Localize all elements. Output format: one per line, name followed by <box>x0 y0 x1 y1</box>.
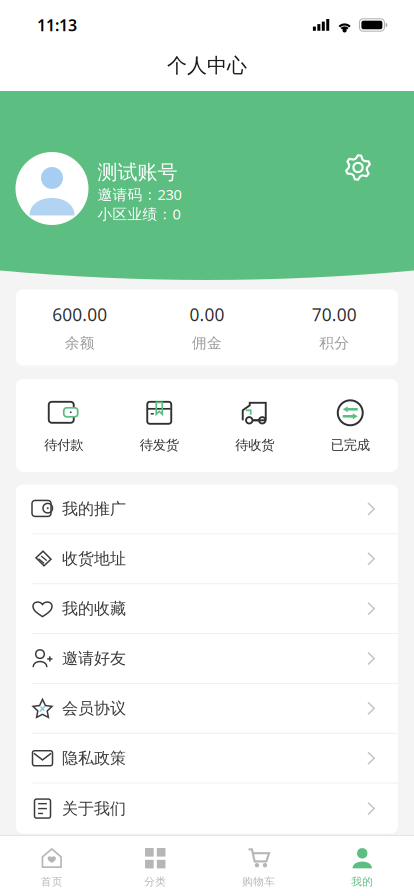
staticText: 收货地址 <box>62 549 126 569</box>
staticText: 分类 <box>144 875 166 888</box>
staticText: 11:13 <box>37 14 77 36</box>
staticText: 个人中心 <box>167 53 247 78</box>
button[interactable]: 邀请好友 <box>16 634 398 684</box>
staticText: 已完成 <box>331 437 370 453</box>
staticText: 我的推广 <box>62 499 126 519</box>
staticText: 邀请好友 <box>62 649 126 668</box>
staticText: 邀请码：230 <box>97 184 181 204</box>
button[interactable]: 待收货 <box>207 379 302 472</box>
button[interactable]: 已完成 <box>302 379 398 472</box>
staticText: 购物车 <box>242 875 275 888</box>
staticText: 70.00 <box>312 303 357 326</box>
button[interactable]: 我的收藏 <box>16 584 398 634</box>
staticText: 0.00 <box>189 303 224 326</box>
button[interactable]: 分类 <box>103 836 207 896</box>
staticText: 待发货 <box>140 437 179 453</box>
staticText: 积分 <box>319 334 349 352</box>
button[interactable]: 关于我们 <box>16 784 398 834</box>
button[interactable]: 隐私政策 <box>16 734 398 784</box>
button[interactable]: 购物车 <box>207 836 310 896</box>
button[interactable]: 我的推广 <box>16 484 398 534</box>
staticText: 小区业绩：0 <box>97 204 180 223</box>
button[interactable]: 我的 <box>310 836 414 896</box>
staticText: 隐私政策 <box>62 748 126 768</box>
button[interactable]: 收货地址 <box>16 534 398 584</box>
staticText: 我的收藏 <box>62 599 126 618</box>
staticText: 我的 <box>351 875 373 888</box>
staticText: 首页 <box>41 875 63 888</box>
staticText: 待收货 <box>235 437 274 453</box>
staticText: 测试账号 <box>97 160 177 185</box>
button[interactable]: 首页 <box>0 836 103 896</box>
staticText: 余额 <box>65 334 95 352</box>
button[interactable]: 待付款 <box>16 379 111 472</box>
button[interactable]: 设置 <box>338 147 378 187</box>
button[interactable]: 待发货 <box>111 379 207 472</box>
staticText: 待付款 <box>44 437 83 453</box>
staticText: 关于我们 <box>62 799 126 818</box>
staticText: 佣金 <box>192 334 222 352</box>
staticText: 会员协议 <box>62 698 126 718</box>
staticText: 600.00 <box>52 303 107 326</box>
button[interactable]: 会员协议 <box>16 684 398 734</box>
